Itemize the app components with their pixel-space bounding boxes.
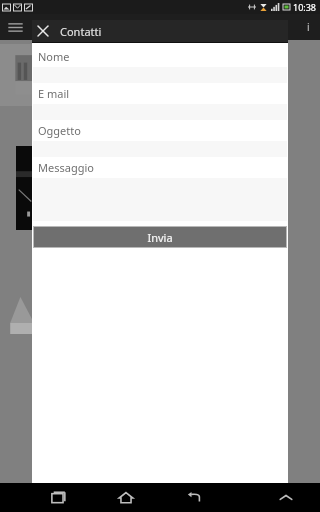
staticText: 10:38 — [293, 1, 317, 13]
staticText: Invia — [147, 230, 173, 245]
button[interactable]: Back — [181, 485, 207, 511]
staticText: Oggetto — [38, 123, 81, 138]
button[interactable]: Invia — [33, 226, 287, 248]
staticText: Nome — [38, 49, 70, 64]
staticText: Contatti — [60, 24, 102, 39]
button[interactable]: Menu — [5, 17, 25, 37]
button[interactable]: Recents — [45, 485, 71, 511]
button[interactable]: Expand — [273, 485, 299, 511]
staticText: Messaggio — [38, 160, 94, 175]
staticText: E mail — [38, 86, 70, 101]
button[interactable]: Home — [113, 485, 139, 511]
staticText: i — [307, 20, 310, 34]
button[interactable]: Close — [32, 20, 54, 42]
